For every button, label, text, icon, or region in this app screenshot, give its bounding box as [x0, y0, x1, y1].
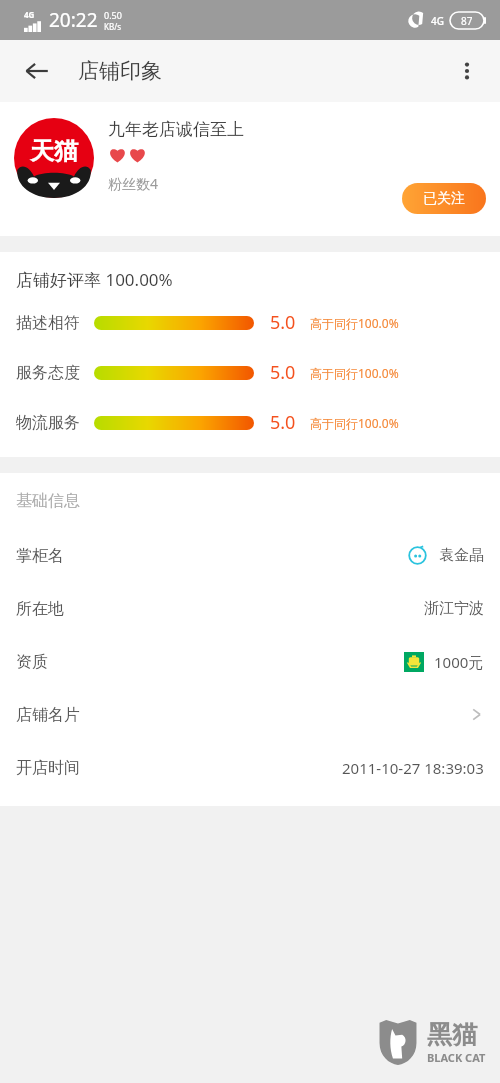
staticText: 5.0 [270, 410, 296, 435]
staticText: 高于同行100.0% [310, 315, 399, 331]
staticText: 87 [461, 14, 473, 28]
staticText: 掌柜名 [16, 546, 64, 566]
button[interactable]: Back [14, 48, 60, 94]
staticText: 4G [431, 14, 444, 28]
staticText: 0.50 [104, 9, 122, 21]
staticText: 5.0 [270, 360, 296, 385]
staticText: 5.0 [270, 310, 296, 335]
button[interactable]: 已关注 [402, 183, 486, 214]
staticText: 粉丝数4 [108, 174, 159, 193]
staticText: KB/s [104, 21, 121, 32]
staticText: 20:22 [49, 7, 98, 33]
staticText: 开店时间 [16, 758, 80, 778]
staticText: 物流服务 [16, 413, 80, 433]
staticText: 店铺印象 [78, 58, 162, 84]
staticText: 描述相符 [16, 313, 80, 333]
button[interactable]: More options [444, 48, 490, 94]
staticText: 已关注 [423, 190, 465, 208]
staticText: 黑猫 [427, 1019, 477, 1050]
staticText: 所在地 [16, 599, 64, 619]
staticText: BLACK CAT [427, 1050, 486, 1065]
staticText: 高于同行100.0% [310, 415, 399, 431]
staticText: 袁金晶 [439, 546, 484, 565]
staticText: 店铺好评率 100.00% [16, 268, 173, 291]
staticText: 天猫 [30, 136, 78, 166]
staticText: 资质 [16, 652, 48, 672]
button[interactable]: 店铺名片 [0, 688, 500, 741]
staticText: 浙江宁波 [424, 599, 484, 618]
staticText: 店铺名片 [16, 705, 80, 725]
staticText: 基础信息 [16, 491, 80, 511]
staticText: 九年老店诚信至上 [108, 119, 244, 140]
staticText: 服务态度 [16, 363, 80, 383]
staticText: 4G [24, 9, 35, 20]
staticText: 2011-10-27 18:39:03 [342, 758, 484, 778]
staticText: 高于同行100.0% [310, 365, 399, 381]
staticText: 1000元 [434, 652, 484, 672]
